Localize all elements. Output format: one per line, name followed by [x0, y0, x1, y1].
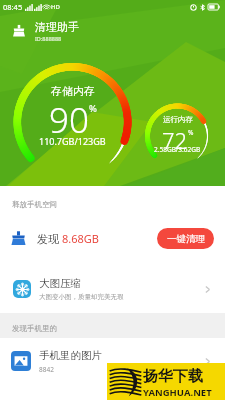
staticText: HD	[51, 3, 60, 11]
staticText: 存储内存	[51, 84, 95, 98]
staticText: 发现	[37, 231, 62, 246]
button[interactable]: 大图压缩	[0, 266, 225, 312]
staticText: %	[89, 102, 97, 115]
staticText: %	[188, 128, 194, 137]
staticText: 释放手机空间	[12, 200, 57, 209]
staticText: 手机里的图片	[39, 349, 102, 362]
button[interactable]: 一键清理	[157, 228, 214, 249]
other: App icon	[11, 23, 27, 39]
staticText: 一键清理	[167, 233, 205, 245]
staticText: 8842	[39, 365, 54, 374]
other: Open	[202, 356, 213, 367]
staticText: 发现手机里的	[12, 324, 57, 333]
staticText: YANGHUA.NET	[143, 386, 212, 399]
staticText: 2.58GB/3.62GB	[154, 145, 201, 154]
staticText: 运行内存	[163, 115, 193, 124]
other: Open	[202, 284, 213, 295]
staticText: 扬华下载	[143, 367, 203, 386]
staticText: 72	[162, 125, 188, 155]
button[interactable]: 发现	[0, 215, 225, 262]
staticText: 大图变小图，质量却完美无瑕	[39, 293, 124, 301]
button[interactable]: 手机里的图片	[0, 338, 225, 384]
staticText: 08:45	[3, 2, 23, 12]
staticText: ID:888888	[35, 35, 62, 42]
staticText: 大图压缩	[39, 277, 81, 290]
staticText: 90	[49, 96, 89, 144]
staticText: 清理助手	[35, 20, 79, 34]
staticText: 110.7GB/123GB	[39, 135, 106, 147]
staticText: 8.68GB	[62, 231, 99, 246]
